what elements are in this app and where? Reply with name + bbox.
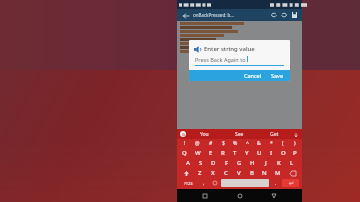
staticText: ?123 bbox=[184, 181, 193, 186]
button[interactable]: ^ bbox=[241, 139, 253, 148]
staticText: D bbox=[211, 159, 216, 167]
staticText: L bbox=[290, 159, 294, 167]
button[interactable]: S bbox=[194, 158, 207, 168]
button[interactable]: Back bbox=[199, 190, 211, 202]
button[interactable]: Emoji bbox=[209, 179, 220, 187]
staticText: C bbox=[224, 169, 228, 177]
staticText: ! bbox=[184, 140, 186, 147]
button[interactable]: O bbox=[277, 148, 289, 158]
button[interactable]: B bbox=[245, 168, 258, 178]
staticText: ^ bbox=[246, 140, 249, 147]
staticText: You bbox=[200, 131, 209, 138]
staticText: T bbox=[233, 149, 237, 157]
button[interactable]: Get bbox=[257, 131, 292, 138]
staticText: . bbox=[275, 180, 277, 187]
button[interactable]: You bbox=[186, 131, 222, 138]
staticText: M bbox=[275, 169, 281, 177]
button[interactable]: See bbox=[222, 131, 257, 138]
button[interactable]: @ bbox=[191, 139, 204, 148]
button[interactable]: Q bbox=[178, 148, 191, 158]
staticText: V bbox=[237, 169, 241, 177]
button[interactable]: J bbox=[259, 158, 272, 168]
button[interactable]: More suggestions bbox=[292, 131, 299, 138]
button[interactable]: E bbox=[204, 148, 217, 158]
staticText: % bbox=[233, 140, 238, 147]
button[interactable]: Recents bbox=[268, 190, 280, 202]
staticText: @ bbox=[195, 140, 200, 147]
button[interactable]: ) bbox=[289, 139, 301, 148]
staticText: Save bbox=[271, 72, 284, 79]
button[interactable]: K bbox=[272, 158, 285, 168]
staticText: Y bbox=[245, 149, 249, 157]
staticText: S bbox=[199, 159, 203, 167]
staticText: onBackPressed: b... bbox=[193, 12, 269, 18]
button[interactable]: * bbox=[265, 139, 277, 148]
staticText: ) bbox=[294, 140, 296, 147]
button[interactable]: M bbox=[271, 168, 284, 178]
button[interactable]: P bbox=[289, 148, 301, 158]
staticText: X bbox=[211, 169, 215, 177]
button[interactable]: Y bbox=[241, 148, 253, 158]
button[interactable]: R bbox=[217, 148, 229, 158]
button[interactable]: W bbox=[191, 148, 204, 158]
button[interactable]: I bbox=[265, 148, 277, 158]
staticText: J bbox=[265, 159, 267, 167]
button[interactable]: Redo bbox=[279, 10, 289, 20]
staticText: Press Back Again to bbox=[195, 56, 246, 63]
staticText: * bbox=[270, 140, 273, 147]
button[interactable]: U bbox=[253, 148, 265, 158]
button[interactable]: # bbox=[204, 139, 217, 148]
staticText: E bbox=[209, 149, 213, 157]
staticText: P bbox=[293, 149, 297, 157]
staticText: F bbox=[225, 159, 229, 167]
button[interactable]: , bbox=[198, 179, 209, 187]
staticText: See bbox=[235, 131, 244, 138]
staticText: Q bbox=[182, 149, 187, 157]
staticText: # bbox=[209, 140, 213, 147]
staticText: G bbox=[237, 159, 242, 167]
staticText: $ bbox=[222, 140, 225, 147]
button[interactable]: Shift bbox=[178, 168, 194, 178]
button[interactable]: Cancel bbox=[239, 70, 267, 81]
button[interactable]: V bbox=[232, 168, 245, 178]
button[interactable]: Space bbox=[221, 179, 269, 187]
button[interactable]: L bbox=[285, 158, 298, 168]
staticText: K bbox=[277, 159, 281, 167]
button[interactable]: . bbox=[270, 179, 281, 187]
button[interactable]: ?123 bbox=[179, 179, 198, 187]
button[interactable]: N bbox=[258, 168, 271, 178]
button[interactable]: Save bbox=[289, 10, 299, 20]
button[interactable]: & bbox=[253, 139, 265, 148]
button[interactable]: Home bbox=[234, 190, 246, 202]
button[interactable]: Undo bbox=[269, 10, 279, 20]
staticText: W bbox=[195, 149, 201, 157]
staticText: N bbox=[262, 169, 267, 177]
staticText: & bbox=[257, 140, 261, 147]
button[interactable]: A bbox=[181, 158, 194, 168]
button[interactable]: ! bbox=[178, 139, 191, 148]
button[interactable]: Save bbox=[267, 70, 290, 81]
button[interactable]: Z bbox=[194, 168, 206, 178]
button[interactable]: Enter bbox=[282, 179, 299, 187]
button[interactable]: C bbox=[219, 168, 232, 178]
staticText: U bbox=[257, 149, 262, 157]
button[interactable]: G bbox=[233, 158, 246, 168]
staticText: Get bbox=[270, 131, 279, 138]
button[interactable]: X bbox=[206, 168, 219, 178]
staticText: G bbox=[182, 132, 185, 137]
button[interactable]: $ bbox=[217, 139, 229, 148]
staticText: , bbox=[203, 180, 205, 187]
staticText: B bbox=[250, 169, 254, 177]
button[interactable]: Google bbox=[180, 131, 186, 137]
staticText: Cancel bbox=[244, 72, 262, 79]
button[interactable]: D bbox=[207, 158, 220, 168]
button[interactable]: H bbox=[246, 158, 259, 168]
button[interactable]: Back bbox=[180, 10, 191, 21]
button[interactable]: % bbox=[229, 139, 241, 148]
button[interactable]: F bbox=[220, 158, 233, 168]
button[interactable]: Backspace bbox=[284, 168, 301, 178]
button[interactable]: ( bbox=[277, 139, 289, 148]
button[interactable]: T bbox=[229, 148, 241, 158]
staticText: H bbox=[250, 159, 255, 167]
staticText: A bbox=[186, 159, 190, 167]
